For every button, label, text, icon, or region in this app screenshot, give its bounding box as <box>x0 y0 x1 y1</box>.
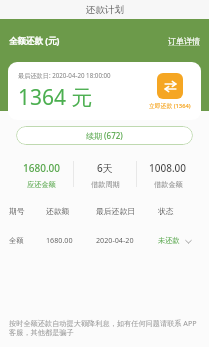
staticText: 未还款 <box>158 236 180 245</box>
staticText: 1008.00 <box>149 161 187 175</box>
staticText: 借款周期 <box>91 180 120 189</box>
other: 立即还款 <box>157 73 183 99</box>
staticText: 立即还款 (1364) <box>149 102 191 110</box>
staticText: 订单详情 <box>168 36 200 46</box>
button[interactable]: 续期 (672) <box>16 126 193 145</box>
staticText: 续期 (672) <box>86 130 123 141</box>
staticText: 状态 <box>158 206 200 216</box>
staticText: 按时全额还款自动提大额降利息，如有任何问题请联系 APP 客服，其他都是骗子 <box>9 318 200 338</box>
staticText: 1364 元 <box>18 83 93 112</box>
button[interactable]: 全额 <box>0 235 209 245</box>
button[interactable]: 立即还款 <box>147 73 193 110</box>
staticText: 全额还款 (元) <box>9 35 60 47</box>
staticText: 最后还款日 <box>96 206 158 216</box>
staticText: 最后还款日: 2020-04-20 18:00:00 <box>18 71 111 79</box>
staticText: 还款计划 <box>86 4 124 16</box>
staticText: 2020-04-20 <box>96 235 158 245</box>
staticText: 1680.00 <box>23 161 61 175</box>
staticText: 借款金额 <box>154 180 183 189</box>
staticText: 1680.00 <box>46 235 96 245</box>
staticText: 期号 <box>9 206 46 216</box>
staticText: 还款额 <box>46 206 96 216</box>
other: 展开 <box>184 237 192 245</box>
staticText: 6天 <box>97 161 113 175</box>
staticText: 全额 <box>9 236 46 245</box>
staticText: 应还金额 <box>27 180 56 189</box>
button[interactable]: 订单详情 <box>168 36 200 46</box>
